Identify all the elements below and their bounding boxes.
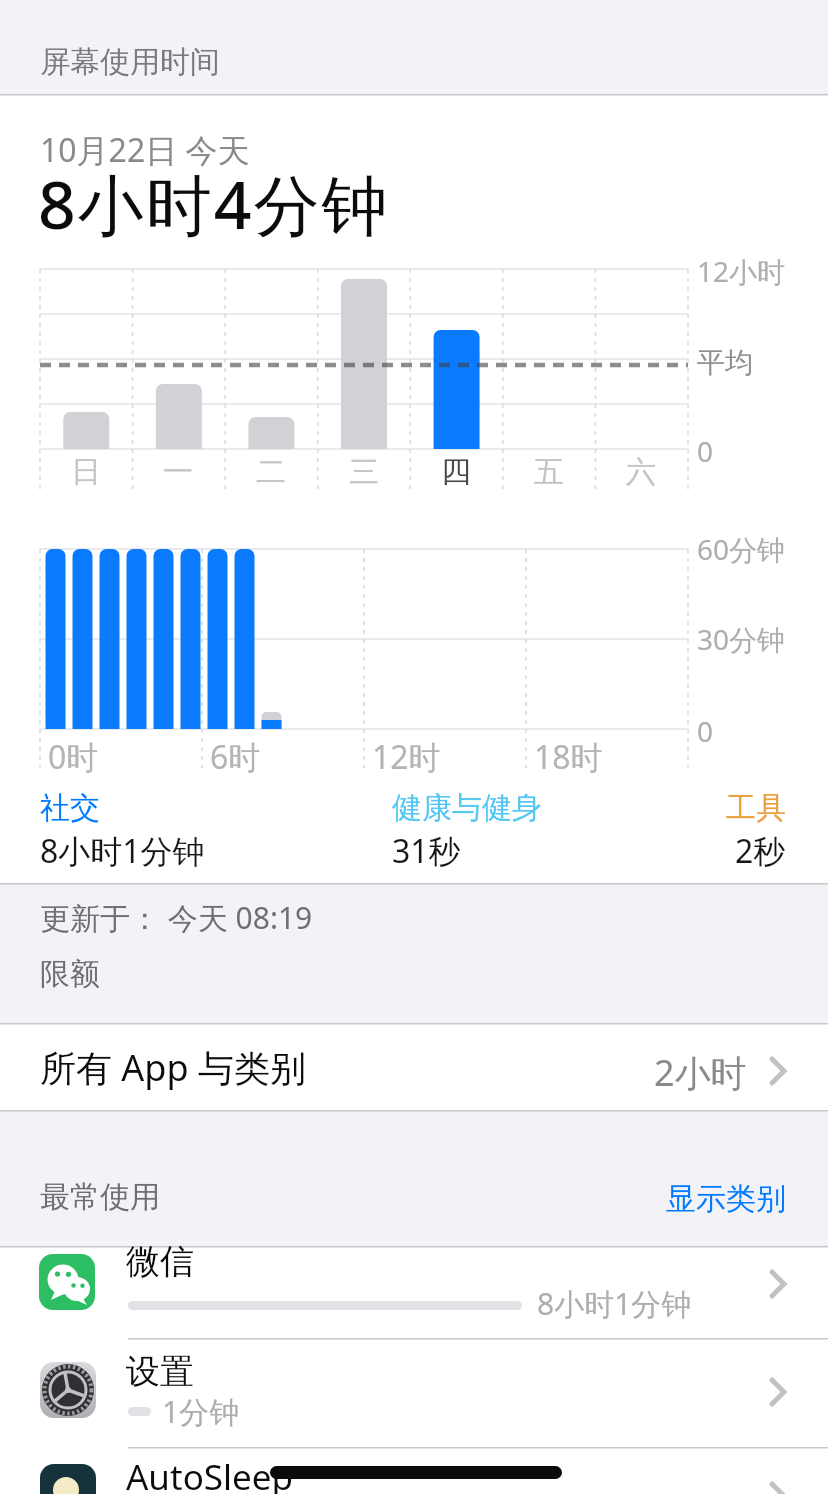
- staticText: 工具: [726, 789, 786, 827]
- staticText: 18时: [534, 735, 603, 779]
- staticText: 显示类别: [666, 1180, 786, 1218]
- staticText: 12小时: [697, 252, 786, 290]
- staticText: 60分钟: [697, 530, 786, 568]
- staticText: 健康与健身: [392, 789, 542, 827]
- staticText: 日: [71, 453, 101, 491]
- staticText: 2小时: [654, 1048, 747, 1097]
- staticText: 设置: [126, 1350, 194, 1393]
- staticText: 二: [256, 453, 286, 491]
- staticText: 0: [697, 432, 714, 470]
- staticText: 最常使用: [40, 1178, 160, 1216]
- staticText: 所有 App 与类别: [40, 1043, 307, 1092]
- staticText: 1分钟: [162, 1391, 240, 1432]
- staticText: 屏幕使用时间: [40, 43, 220, 81]
- staticText: 四: [441, 453, 471, 491]
- staticText: 12时: [372, 735, 441, 779]
- staticText: 8小时1分钟: [537, 1283, 692, 1324]
- staticText: AutoSleep: [126, 1453, 294, 1494]
- staticText: 微信: [126, 1240, 194, 1283]
- button[interactable]: [0, 1339, 828, 1447]
- staticText: 限额: [40, 955, 100, 993]
- button[interactable]: [0, 1448, 828, 1494]
- staticText: 一: [163, 453, 193, 491]
- staticText: 10月22日 今天: [40, 128, 250, 172]
- staticText: 更新于： 今天 08:19: [40, 897, 313, 938]
- staticText: 三: [349, 453, 379, 491]
- staticText: 五: [534, 453, 564, 491]
- staticText: 31秒: [392, 829, 461, 873]
- staticText: 0时: [48, 735, 99, 779]
- staticText: 0: [697, 712, 714, 750]
- staticText: 社交: [40, 789, 100, 827]
- staticText: 六: [626, 453, 656, 491]
- button[interactable]: [0, 1247, 828, 1338]
- staticText: 30分钟: [697, 620, 786, 658]
- button[interactable]: [0, 1025, 828, 1110]
- staticText: 6时: [210, 735, 261, 779]
- staticText: 8小时4分钟: [38, 158, 390, 248]
- staticText: 2秒: [735, 829, 786, 873]
- staticText: 平均: [697, 345, 753, 380]
- button[interactable]: [620, 1168, 800, 1224]
- staticText: 8小时1分钟: [40, 829, 205, 873]
